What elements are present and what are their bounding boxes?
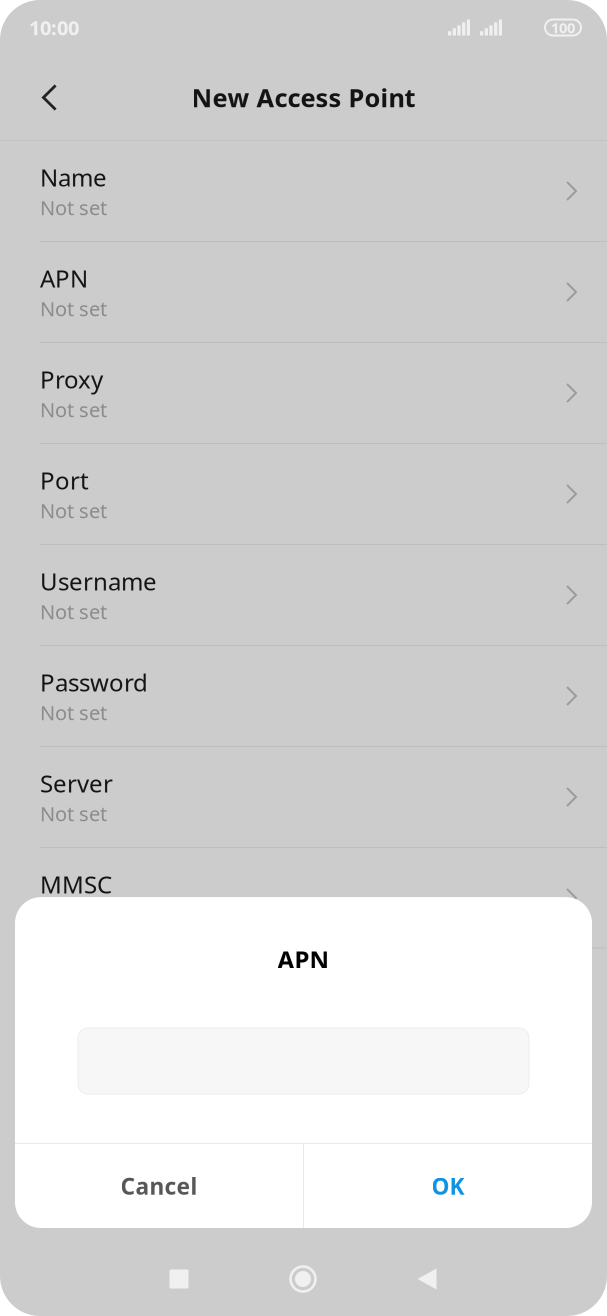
staticText: Not set <box>40 598 107 625</box>
staticText: Not set <box>40 497 107 524</box>
staticText: APN <box>277 943 329 975</box>
staticText: Not set <box>40 699 107 726</box>
staticText: APN <box>40 262 88 294</box>
button[interactable]: MMSC <box>0 848 607 948</box>
button[interactable]: Back <box>365 1249 489 1309</box>
staticText: MMSC <box>40 868 112 900</box>
staticText: Password <box>40 666 148 698</box>
button[interactable]: Port <box>0 444 607 545</box>
button[interactable]: Proxy <box>0 343 607 444</box>
button[interactable]: Recent apps <box>117 1249 241 1309</box>
staticText: Not set <box>40 396 107 423</box>
staticText: Cancel <box>120 1171 197 1201</box>
button[interactable]: Password <box>0 646 607 747</box>
button[interactable]: Username <box>0 545 607 646</box>
staticText: Name <box>40 161 107 193</box>
staticText: Username <box>40 565 157 597</box>
button[interactable]: APN <box>0 242 607 343</box>
button[interactable]: Name <box>0 141 607 242</box>
button[interactable]: Back <box>0 70 77 125</box>
button[interactable]: Home <box>241 1249 365 1309</box>
staticText: Server <box>40 767 113 799</box>
staticText: Not set <box>40 800 107 827</box>
staticText: Not set <box>40 295 107 322</box>
staticText: 10:00 <box>29 14 79 41</box>
staticText: Not set <box>40 194 107 221</box>
staticText: Proxy <box>40 363 103 395</box>
button[interactable]: Server <box>0 747 607 848</box>
staticText: New Access Point <box>191 81 415 114</box>
button[interactable]: OK <box>304 1144 592 1228</box>
staticText: Port <box>40 464 89 496</box>
staticText: 100 <box>551 18 575 37</box>
staticText: OK <box>431 1171 464 1201</box>
button[interactable]: Cancel <box>15 1144 303 1228</box>
